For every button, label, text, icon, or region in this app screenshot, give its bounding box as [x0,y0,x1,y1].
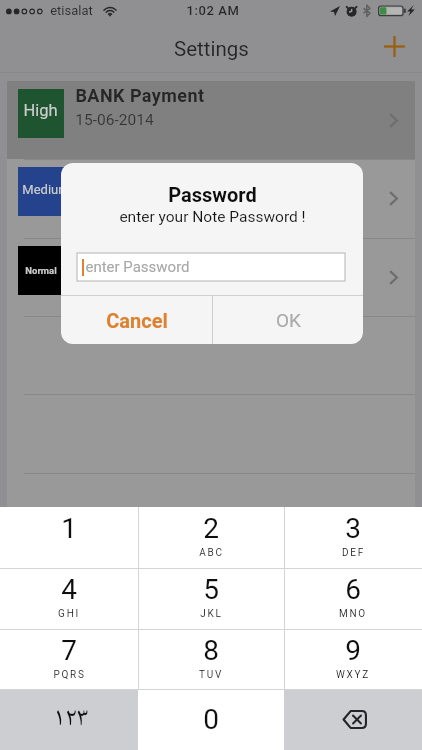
staticText: 6 [345,573,361,606]
button[interactable]: Backspace [284,689,422,750]
staticText: 4 [61,573,77,606]
staticText: GHI [58,608,80,620]
staticText: JKL [200,608,223,620]
staticText: 3 [345,512,361,545]
staticText: enter your Note Password ! [119,208,306,226]
staticText: etisalat [50,3,93,18]
button[interactable]: 5 [138,568,284,629]
button[interactable]: Add [374,26,414,66]
staticText: MNO [339,608,367,620]
staticText: 7 [61,634,77,667]
staticText: TUV [199,669,223,681]
staticText: 8 [203,634,219,667]
button[interactable]: 6 [284,568,422,629]
staticText: ١٢٣ [53,697,89,741]
staticText: 2 [203,512,219,545]
button[interactable]: 7 [0,629,138,690]
staticText: Settings [174,37,249,61]
button[interactable]: 2 [138,507,284,568]
button[interactable]: 3 [284,507,422,568]
button[interactable]: 8 [138,629,284,690]
button[interactable]: 9 [284,629,422,690]
staticText: 9 [345,634,361,667]
button[interactable]: Medium [7,159,415,237]
button[interactable]: 0 [138,689,284,750]
button[interactable]: Cancel [61,296,212,344]
staticText: 0 [203,703,219,736]
staticText: Password [168,183,257,206]
staticText: WXYZ [336,669,370,681]
button[interactable]: enter Password [77,253,345,281]
staticText: 1:02 AM [186,3,240,18]
button[interactable]: OK [213,296,363,344]
button[interactable]: 1 [0,507,138,568]
button[interactable]: ١٢٣ [0,689,138,750]
staticText: Normal [25,265,57,276]
staticText: Cancel [106,309,168,332]
staticText: BANK Payment [75,85,205,106]
staticText: PQRS [53,669,86,681]
button[interactable]: High [7,81,415,159]
staticText: 15-06-2014 [75,111,154,129]
staticText: OK [276,309,301,331]
button[interactable]: 4 [0,568,138,629]
staticText: DEF [342,547,365,559]
staticText: Medium [22,182,70,197]
staticText: enter Password [85,258,190,276]
staticText: 5 [203,573,219,606]
staticText: High [23,101,58,120]
staticText: ABC [199,547,224,559]
staticText: 1 [61,512,77,545]
button[interactable]: Normal [7,238,415,316]
